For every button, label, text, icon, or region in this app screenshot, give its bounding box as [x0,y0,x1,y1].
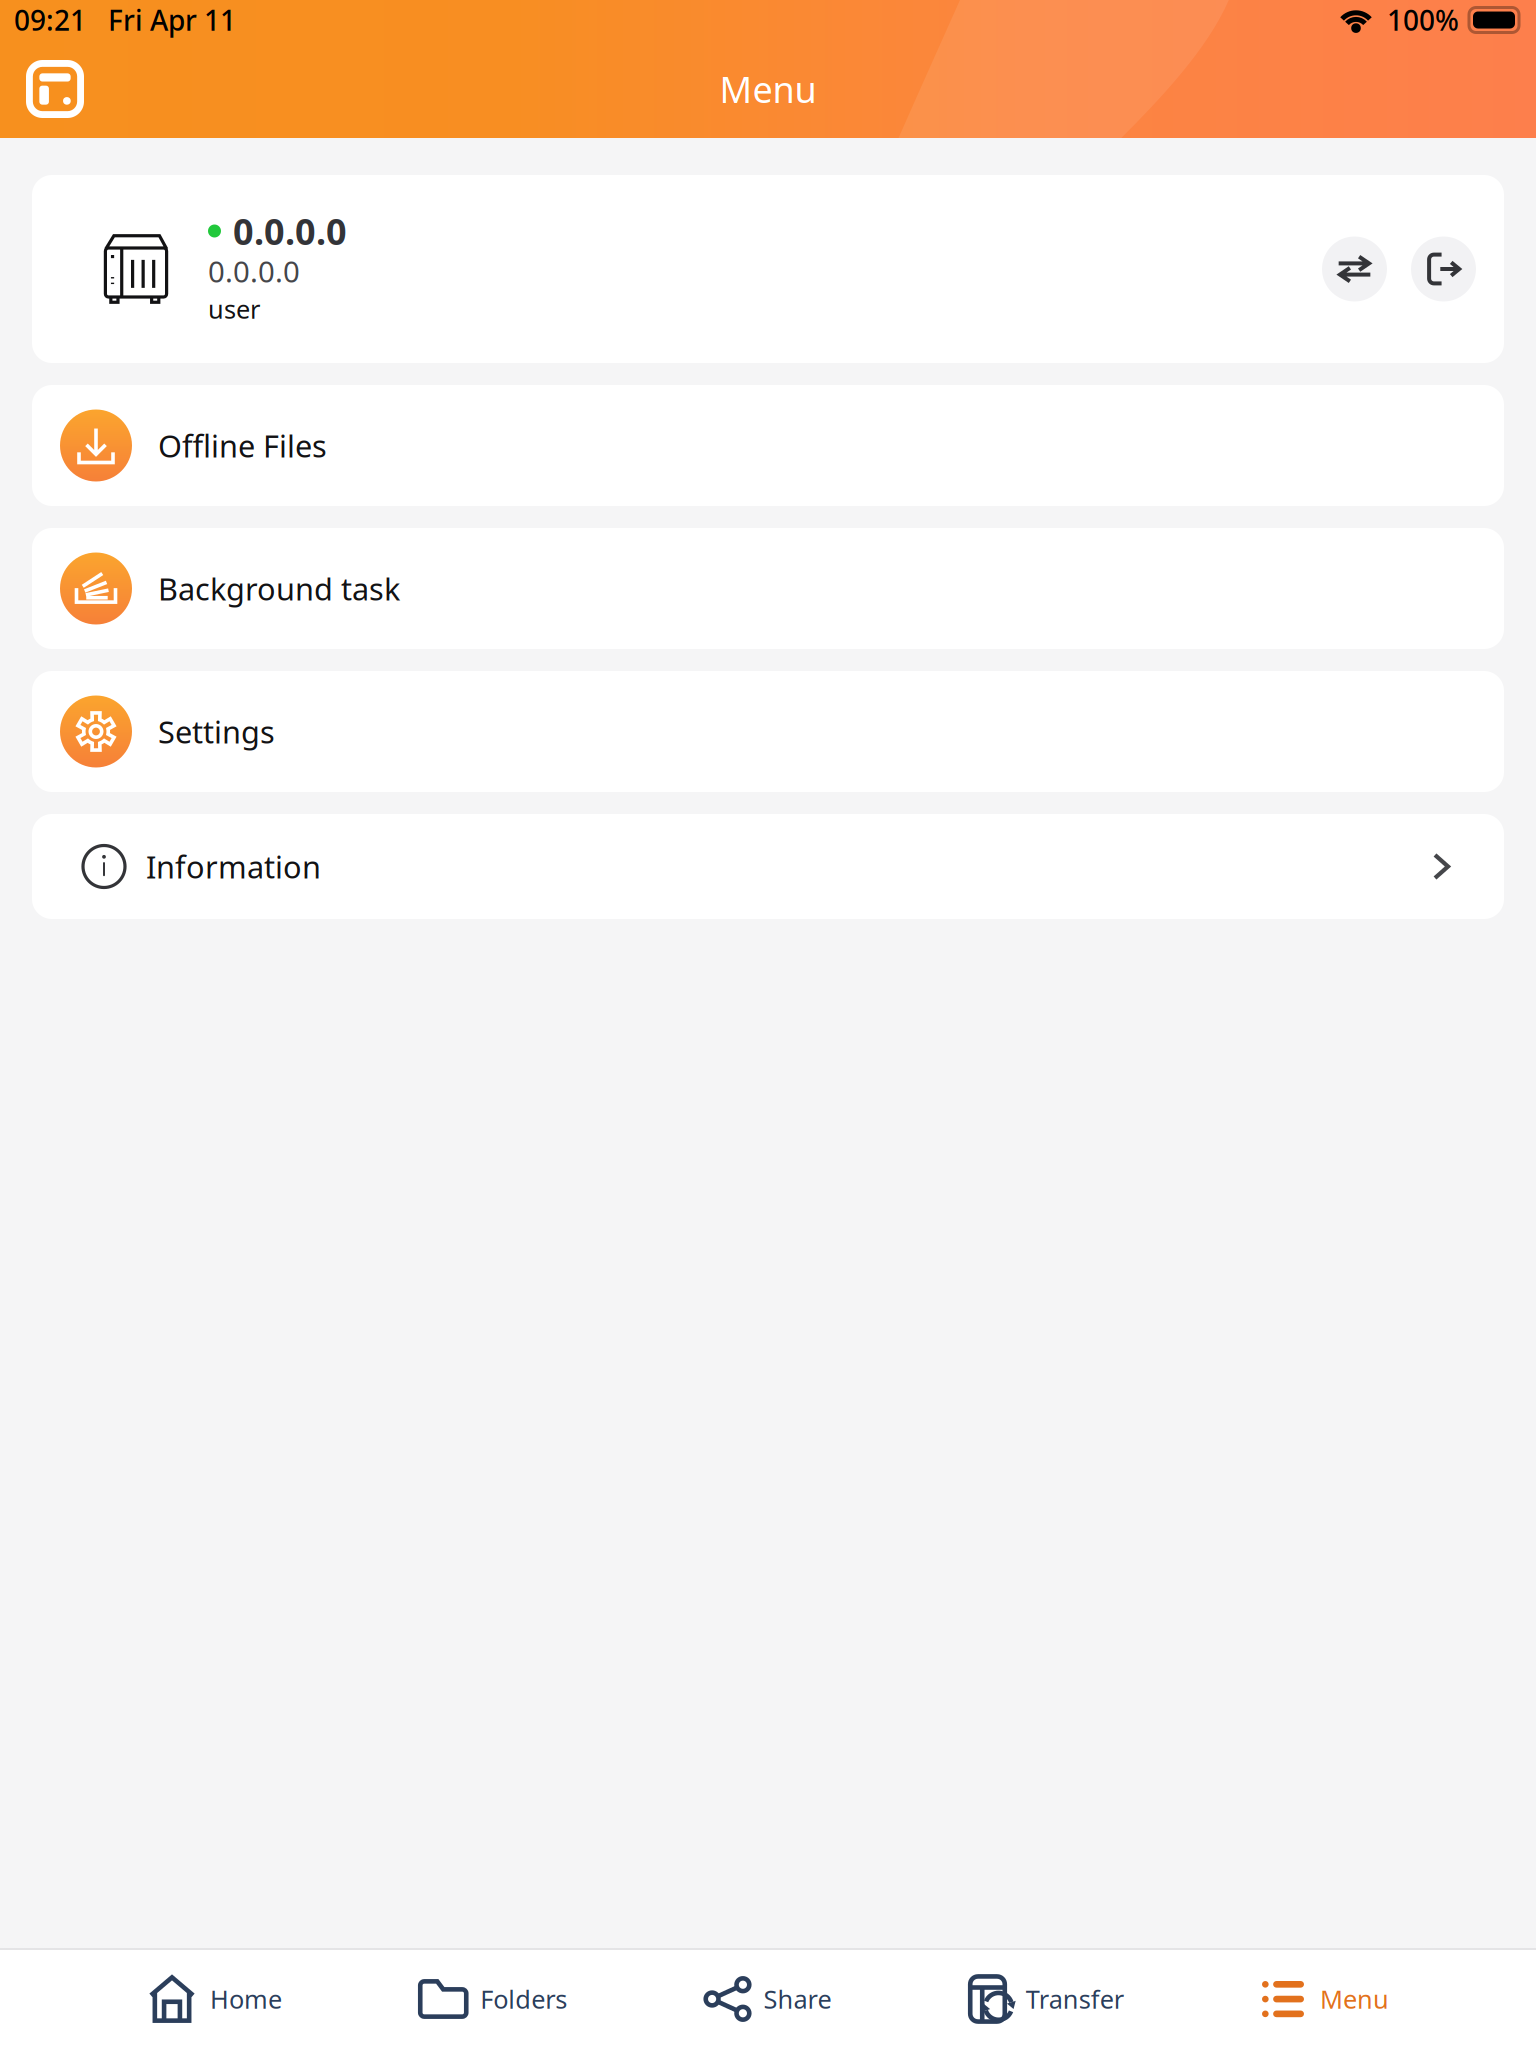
button[interactable]: Home [150,1950,282,2048]
button[interactable]: Log out [1411,236,1476,301]
staticText: Menu [719,65,816,113]
button[interactable]: Offline Files [32,385,1504,506]
button[interactable]: Menu [1262,1950,1389,2048]
button[interactable]: Switch server [1322,236,1387,301]
button[interactable]: Sidebar [0,40,110,138]
staticText: Offline Files [158,425,327,466]
button[interactable]: Background task [32,528,1504,649]
staticText: Transfer [1026,1982,1124,2016]
staticText: Home [210,1982,282,2016]
staticText: Folders [480,1982,567,2016]
staticText: user [208,292,260,326]
staticText: Fri Apr 11 [108,1,236,39]
button[interactable]: Folders [420,1950,567,2048]
staticText: 100% [1387,1,1459,39]
button[interactable]: Settings [32,671,1504,792]
button[interactable]: Transfer [970,1950,1124,2048]
staticText: 09:21 [14,1,86,39]
button[interactable]: Share [705,1950,831,2048]
button[interactable]: Information [32,814,1504,919]
staticText: Menu [1320,1982,1389,2016]
staticText: 0.0.0.0 [208,251,300,290]
staticText: Background task [158,568,400,609]
staticText: 0.0.0.0 [233,207,347,255]
staticText: Share [763,1982,831,2016]
staticText: Information [146,846,321,887]
staticText: Settings [158,711,275,752]
